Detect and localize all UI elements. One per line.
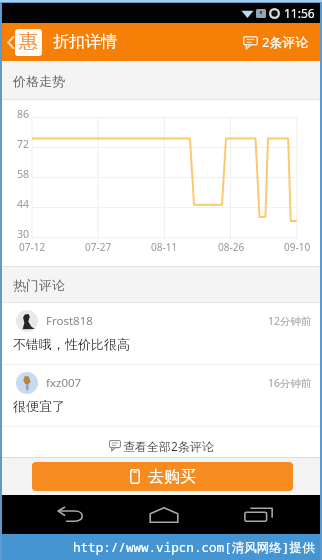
staticText: 72	[17, 137, 30, 151]
staticText: 09-10	[284, 240, 311, 254]
button[interactable]: fxz007	[2, 365, 320, 427]
button[interactable]: Back	[43, 495, 99, 534]
button[interactable]: Recents	[230, 495, 286, 534]
button[interactable]: Frost818	[2, 303, 320, 365]
button[interactable]: 查看全部2条评论	[2, 428, 320, 457]
staticText: 11:56	[284, 5, 315, 21]
staticText: fxz007	[46, 375, 82, 391]
staticText: 查看全部2条评论	[123, 438, 214, 454]
staticText: Frost818	[46, 313, 93, 329]
staticText: 惠	[19, 30, 38, 54]
staticText: 07-12	[19, 240, 46, 254]
staticText: 12分钟前	[268, 314, 312, 328]
staticText: 折扣详情	[53, 32, 117, 52]
staticText: 价格走势	[13, 73, 65, 89]
staticText: 2条评论	[262, 33, 309, 51]
staticText: 07-27	[85, 240, 112, 254]
button[interactable]: Home	[136, 495, 192, 534]
staticText: 去购买	[148, 467, 196, 487]
staticText: 08-26	[218, 240, 245, 254]
staticText: 30	[17, 227, 30, 241]
staticText: 很便宜了	[13, 398, 65, 414]
staticText: 热门评论	[13, 277, 65, 293]
staticText: http://www.vipcn.com[清风网络]提供	[73, 539, 315, 556]
staticText: 44	[17, 197, 30, 211]
staticText: 不错哦，性价比很高	[13, 336, 130, 352]
button[interactable]: Back	[2, 26, 44, 59]
staticText: 08-11	[151, 240, 178, 254]
button[interactable]: 2条评论	[232, 27, 320, 57]
button[interactable]: 去购买	[32, 462, 293, 491]
staticText: 16分钟前	[268, 376, 312, 390]
staticText: 86	[17, 107, 30, 121]
staticText: 58	[17, 167, 30, 181]
other: Back	[7, 36, 14, 49]
